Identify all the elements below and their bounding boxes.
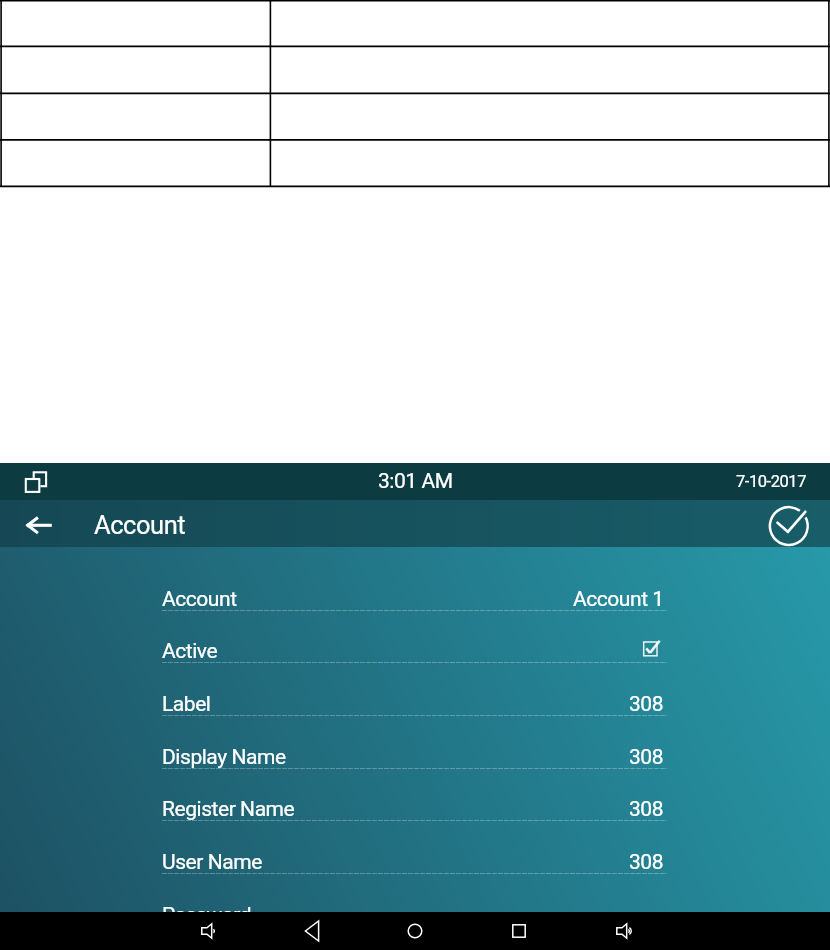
staticText: Password <box>162 903 252 912</box>
button[interactable]: Back <box>20 508 58 546</box>
button[interactable]: Label <box>0 662 830 715</box>
button[interactable]: Volume down <box>192 912 230 950</box>
button[interactable]: Confirm <box>765 502 813 549</box>
button[interactable]: Recents <box>500 912 538 950</box>
button[interactable]: Home <box>396 912 434 950</box>
button[interactable]: User Name <box>0 820 830 873</box>
staticText: Register Name <box>162 797 295 822</box>
button[interactable]: Account <box>0 557 830 610</box>
button[interactable]: Active <box>0 609 830 662</box>
button[interactable]: Register Name <box>0 767 830 820</box>
staticText: User Name <box>162 850 262 875</box>
button[interactable]: Volume up <box>607 912 645 950</box>
button[interactable]: Password <box>0 873 830 912</box>
staticText: Display Name <box>162 745 286 770</box>
staticText: 308 <box>629 797 664 822</box>
staticText: 3:01 AM <box>378 469 453 494</box>
button[interactable]: Back <box>293 912 331 950</box>
staticText: 308 <box>629 850 664 875</box>
staticText: 7-10-2017 <box>736 472 806 491</box>
button[interactable]: Multi window <box>24 468 48 492</box>
staticText: Active <box>162 639 218 664</box>
staticText: Account 1 <box>573 587 664 612</box>
staticText: Account <box>94 510 186 540</box>
staticText: 308 <box>629 745 664 770</box>
staticText: Account <box>162 587 237 612</box>
staticText: 308 <box>629 692 664 717</box>
staticText: Label <box>162 692 211 717</box>
button[interactable]: Display Name <box>0 715 830 768</box>
